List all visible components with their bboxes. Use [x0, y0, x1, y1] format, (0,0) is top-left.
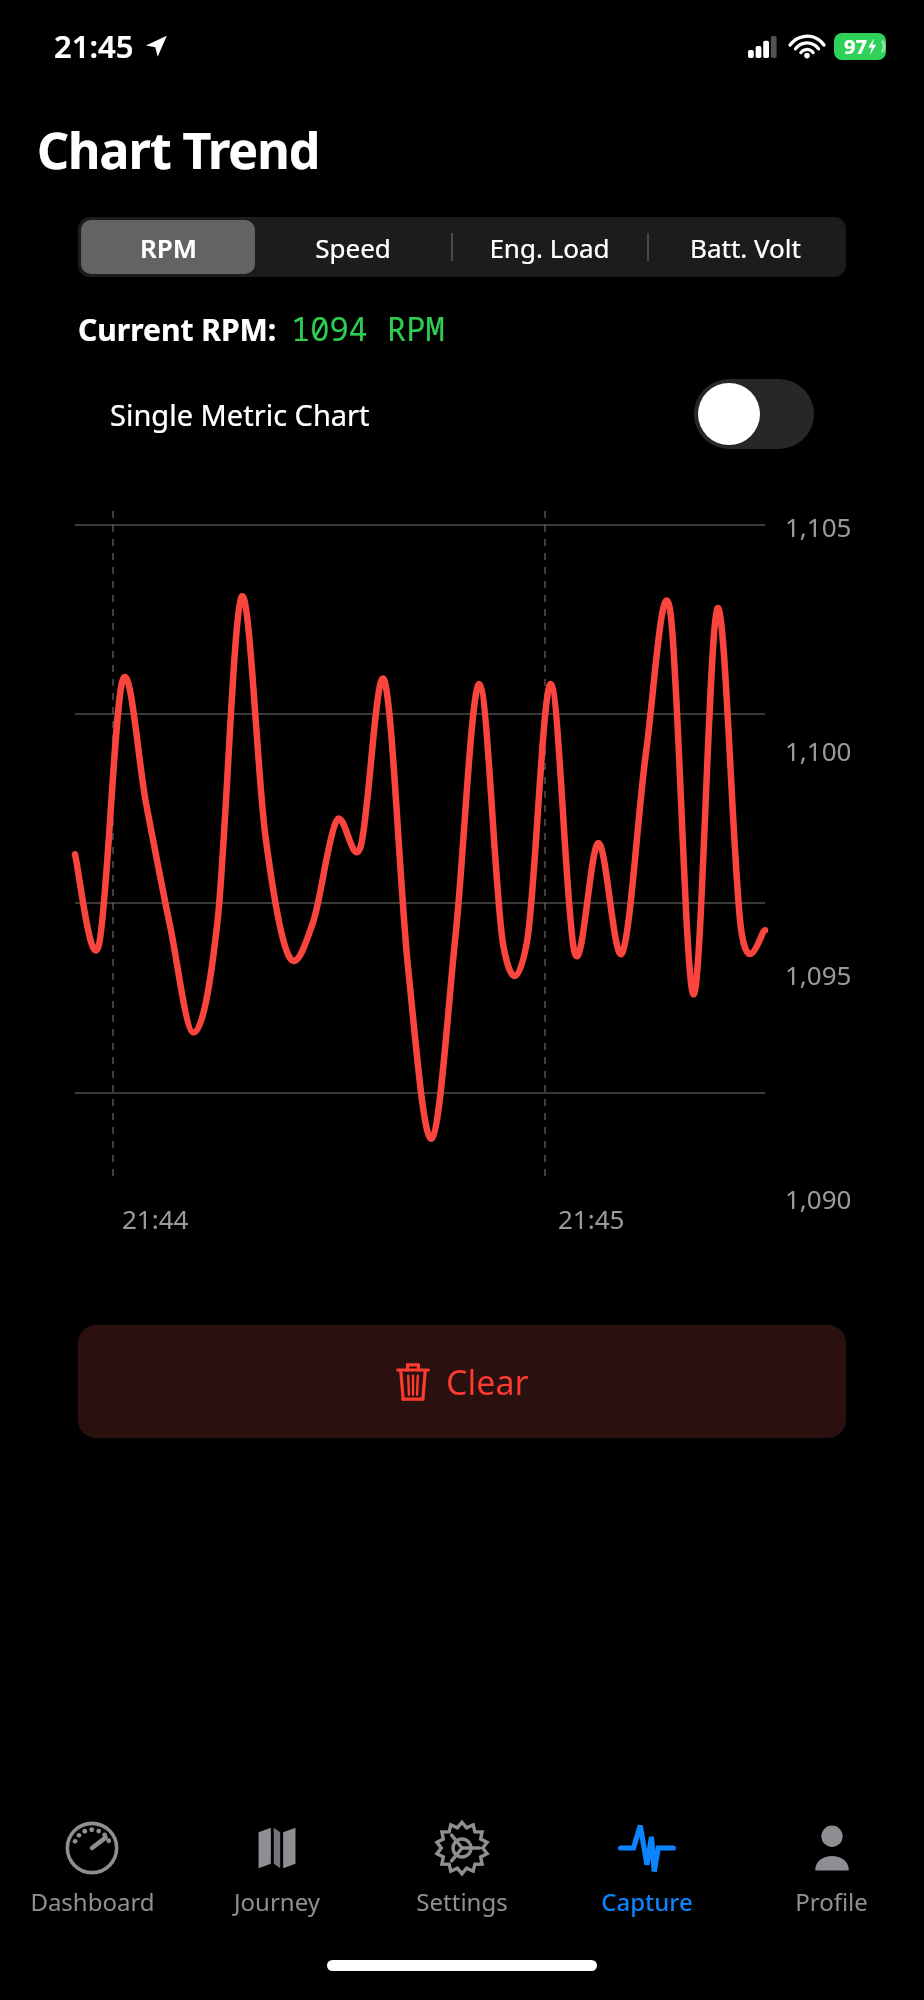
- staticText: 1,095: [785, 957, 852, 992]
- button[interactable]: Capture: [554, 1800, 739, 1950]
- staticText: Single Metric Chart: [110, 395, 370, 434]
- staticText: 1094 RPM: [291, 307, 445, 351]
- staticText: Chart Trend: [37, 116, 320, 184]
- staticText: 1,100: [785, 733, 852, 768]
- staticText: Profile: [795, 1885, 868, 1918]
- button[interactable]: Journey: [184, 1800, 369, 1950]
- button[interactable]: Profile: [739, 1800, 924, 1950]
- staticText: 97: [844, 33, 867, 60]
- staticText: RPM: [140, 230, 197, 265]
- staticText: Capture: [601, 1885, 693, 1918]
- staticText: 21:45: [558, 1201, 625, 1236]
- staticText: Batt. Volt: [690, 230, 801, 265]
- staticText: Current RPM:: [78, 309, 277, 350]
- staticText: Journey: [234, 1885, 320, 1918]
- button[interactable]: Eng. Load: [451, 220, 647, 274]
- staticText: 1,090: [785, 1181, 852, 1216]
- button[interactable]: Dashboard: [0, 1800, 184, 1950]
- button[interactable]: Single Metric Chart: [110, 379, 814, 449]
- button[interactable]: Speed: [255, 220, 451, 274]
- staticText: Settings: [416, 1885, 508, 1918]
- staticText: 21:44: [122, 1201, 189, 1236]
- staticText: Dashboard: [30, 1885, 155, 1918]
- staticText: Clear: [446, 1359, 529, 1405]
- button[interactable]: Batt. Volt: [647, 220, 843, 274]
- staticText: Eng. Load: [489, 230, 610, 265]
- staticText: 21:45: [54, 25, 134, 67]
- staticText: Speed: [315, 230, 391, 265]
- button[interactable]: RPM: [81, 220, 255, 274]
- button[interactable]: Settings: [369, 1800, 554, 1950]
- other: Single Metric Chart toggle: [694, 379, 814, 449]
- button[interactable]: Clear: [78, 1325, 846, 1438]
- staticText: 1,105: [785, 509, 852, 544]
